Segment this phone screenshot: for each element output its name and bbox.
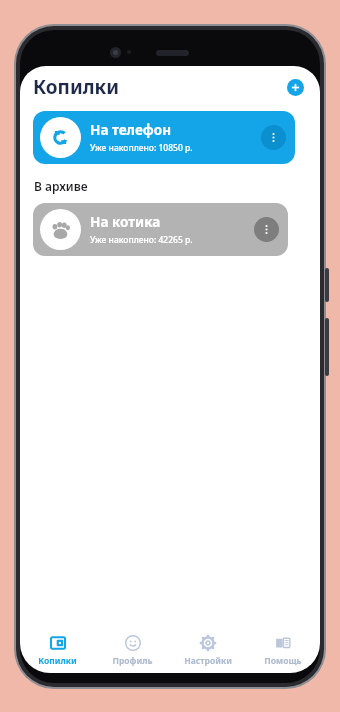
button[interactable]: Помощь <box>245 630 320 671</box>
staticText: Копилки <box>33 74 120 100</box>
staticText: Профиль <box>112 655 153 667</box>
button[interactable]: На котика <box>33 203 288 256</box>
button[interactable]: Настройки <box>170 630 245 671</box>
button[interactable]: Копилки <box>20 630 95 671</box>
staticText: В архиве <box>34 178 88 194</box>
staticText: Копилки <box>38 655 77 667</box>
button[interactable]: На телефон <box>33 111 295 164</box>
staticText: Настройки <box>184 655 232 667</box>
button[interactable]: Меню копилки <box>254 217 279 242</box>
button[interactable]: Добавить копилку <box>282 74 308 100</box>
button[interactable]: Профиль <box>95 630 170 671</box>
button[interactable]: Меню копилки <box>261 125 286 150</box>
staticText: На телефон <box>90 121 171 139</box>
staticText: На котика <box>90 213 161 231</box>
staticText: Уже накоплено: 42265 р. <box>90 234 193 246</box>
staticText: Уже накоплено: 10850 р. <box>90 142 193 154</box>
staticText: Помощь <box>264 655 302 667</box>
